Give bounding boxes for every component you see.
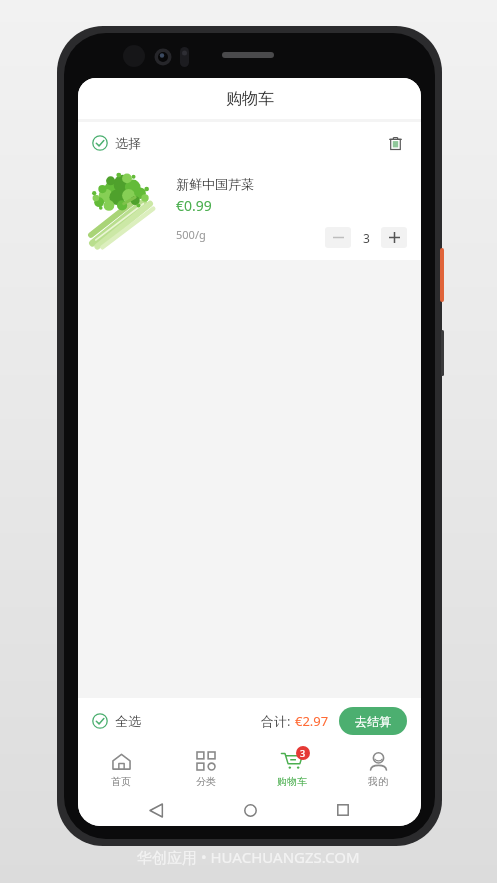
staticText: 我的 (368, 775, 388, 788)
staticText: 去结算 (355, 714, 391, 729)
staticText: 新鲜中国芹菜 (176, 176, 254, 192)
staticText: 首页 (111, 775, 131, 788)
button[interactable]: Recents (327, 794, 359, 826)
button[interactable]: Back (140, 794, 172, 826)
staticText: 选择 (115, 135, 141, 151)
staticText: €0.99 (176, 196, 212, 215)
button[interactable]: 选择 (92, 135, 141, 151)
button[interactable]: 去结算 (339, 707, 407, 735)
button[interactable]: 3 (249, 743, 335, 794)
button[interactable]: Increase quantity (381, 227, 407, 248)
button[interactable]: 我的 (335, 743, 421, 794)
staticText: 分类 (196, 775, 216, 788)
staticText: €2.97 (295, 712, 329, 730)
staticText: 全选 (115, 713, 141, 729)
staticText: 3 (300, 747, 306, 759)
button[interactable]: Delete (383, 131, 407, 155)
button[interactable]: Decrease quantity (325, 227, 351, 248)
button[interactable]: Home (234, 794, 266, 826)
staticText: 购物车 (226, 89, 274, 109)
button[interactable]: 分类 (163, 743, 249, 794)
button[interactable]: 首页 (78, 743, 163, 794)
staticText: 合计: (261, 712, 291, 730)
staticText: 购物车 (277, 775, 307, 788)
button[interactable]: 全选 (92, 713, 141, 729)
staticText: 500/g (176, 227, 206, 242)
staticText: 华创应用 • HUACHUANGZS.COM (137, 847, 360, 867)
staticText: 3 (363, 230, 370, 246)
